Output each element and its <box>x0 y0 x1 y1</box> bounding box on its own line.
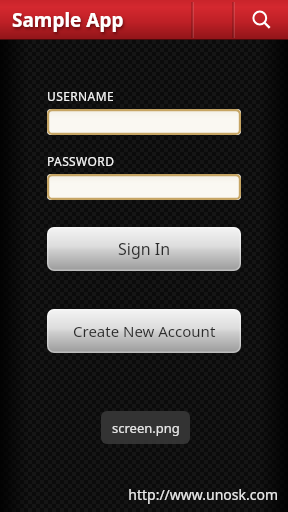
button[interactable] <box>47 174 241 200</box>
button[interactable]: Create New Account <box>47 309 241 353</box>
staticText: Sign In <box>118 238 171 260</box>
staticText: PASSWORD <box>47 153 115 169</box>
staticText: Create New Account <box>73 321 216 341</box>
button[interactable]: Sign In <box>47 227 241 271</box>
button[interactable] <box>47 109 241 135</box>
staticText: screen.png <box>112 419 180 437</box>
staticText: USERNAME <box>47 88 115 104</box>
button[interactable]: screen.png <box>101 411 190 444</box>
button[interactable]: Search <box>234 0 288 40</box>
staticText: Sample App <box>12 7 124 33</box>
staticText: http://www.unosk.com <box>128 485 278 504</box>
